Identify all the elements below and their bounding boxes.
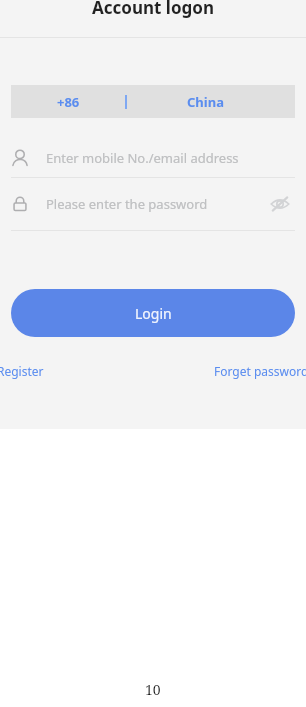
- staticText: Account logon: [92, 0, 214, 19]
- button[interactable]: Show password: [265, 189, 295, 219]
- staticText: +86: [57, 93, 80, 111]
- staticText: Please enter the password: [46, 195, 265, 213]
- staticText: 10: [145, 680, 161, 699]
- button[interactable]: Enter mobile No./email address: [11, 139, 295, 177]
- staticText: Register: [0, 363, 44, 379]
- button[interactable]: Register: [0, 363, 44, 379]
- button[interactable]: Forget password: [214, 363, 306, 379]
- staticText: China: [187, 93, 224, 111]
- button[interactable]: +86: [11, 85, 295, 118]
- button[interactable]: Please enter the password: [11, 178, 295, 230]
- staticText: Forget password: [214, 363, 306, 379]
- staticText: Enter mobile No./email address: [46, 149, 239, 167]
- staticText: Login: [135, 304, 172, 323]
- button[interactable]: Login: [11, 289, 295, 337]
